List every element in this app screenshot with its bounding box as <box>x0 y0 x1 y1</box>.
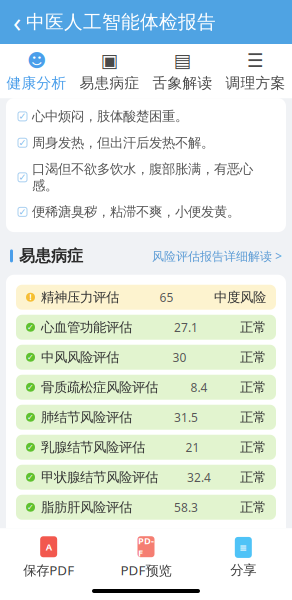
staticText: ▤ <box>173 50 191 71</box>
staticText: PDF预览 <box>120 561 171 579</box>
staticText: 正常 <box>240 349 266 365</box>
staticText: ✓ <box>27 323 34 332</box>
staticText: 正常 <box>240 379 266 395</box>
staticText: ‹ <box>13 4 21 40</box>
staticText: 心血管功能评估 <box>41 319 132 335</box>
staticText: ▣ <box>100 50 118 71</box>
button[interactable]: A <box>0 536 97 579</box>
staticText: PDF <box>138 534 154 559</box>
staticText: ✓ <box>18 207 26 217</box>
staticText: 脂肪肝风险评估 <box>41 499 132 515</box>
staticText: 58.3 <box>174 499 198 515</box>
staticText: 心中烦闷，肢体酸楚困重。 <box>32 108 188 125</box>
staticText: 周身发热，但出汗后发热不解。 <box>32 135 214 151</box>
button[interactable]: ☻ <box>0 50 73 92</box>
staticText: 保存PDF <box>23 561 74 579</box>
staticText: 30 <box>172 349 186 365</box>
button[interactable]: ✓ <box>16 465 276 490</box>
staticText: 32.4 <box>187 469 211 485</box>
staticText: 舌象面象分析 <box>19 571 115 590</box>
staticText: 健康分析 <box>6 74 66 92</box>
staticText: ✓ <box>27 473 34 482</box>
staticText: 易患病症 <box>19 246 83 266</box>
staticText: ✓ <box>27 383 34 392</box>
button[interactable]: ✓ <box>16 315 276 340</box>
staticText: 8.4 <box>190 379 207 395</box>
staticText: 风险评估报告详细解读 > <box>152 248 282 264</box>
staticText: ✓ <box>27 353 34 362</box>
staticText: 正常 <box>240 409 266 425</box>
button[interactable]: ☰ <box>219 50 292 92</box>
staticText: 精神压力评估 <box>41 289 119 305</box>
button[interactable]: ✓ <box>16 375 276 400</box>
staticText: ✓ <box>27 503 34 512</box>
staticText: ☰ <box>247 50 264 71</box>
staticText: 中医知识：常见病中医风险评估> <box>16 531 191 547</box>
staticText: 中度风险 <box>214 289 266 305</box>
staticText: AI专家解读舌象 > <box>188 572 282 588</box>
staticText: ✓ <box>18 111 26 122</box>
staticText: 肺结节风险评估 <box>41 409 132 425</box>
staticText: 中医人工智能体检报告 <box>26 10 216 33</box>
button[interactable]: ! <box>16 285 276 310</box>
button[interactable]: PDF <box>97 536 195 579</box>
staticText: 甲状腺结节风险评估 <box>41 469 158 485</box>
staticText: ✓ <box>18 137 26 148</box>
button[interactable]: ✓ <box>16 405 276 430</box>
staticText: ✓ <box>27 443 34 452</box>
staticText: ✓ <box>27 413 34 422</box>
staticText: 正常 <box>240 469 266 485</box>
staticText: ≡ <box>239 542 247 553</box>
button[interactable]: ▣ <box>73 50 146 92</box>
staticText: 分享 <box>230 562 256 578</box>
button[interactable]: 中医知识：常见病中医风险评估> <box>16 531 191 547</box>
staticText: ✓ <box>18 172 26 183</box>
button[interactable]: ≡ <box>195 537 292 578</box>
staticText: 正常 <box>240 499 266 515</box>
staticText: 31.5 <box>174 409 198 425</box>
staticText: 中风风险评估 <box>41 349 119 365</box>
button[interactable]: ✓ <box>16 495 276 520</box>
button[interactable]: 风险评估报告详细解读 > <box>152 248 282 264</box>
staticText: 便稀溏臭秽，粘滞不爽，小便发黄。 <box>32 204 240 220</box>
button[interactable]: ✓ <box>16 345 276 370</box>
staticText: 口渴但不欲多饮水，腹部胀满，有恶心感。 <box>32 161 253 194</box>
button[interactable]: AI专家解读舌象 > <box>188 572 282 588</box>
staticText: 21 <box>185 439 199 455</box>
staticText: 舌象解读 <box>152 74 212 92</box>
staticText: ! <box>29 292 31 302</box>
staticText: ☻ <box>27 50 46 71</box>
staticText: 骨质疏松症风险评估 <box>41 379 158 395</box>
staticText: 调理方案 <box>225 74 285 92</box>
button[interactable]: ▤ <box>146 50 219 92</box>
staticText: 乳腺结节风险评估 <box>41 439 145 455</box>
staticText: A <box>46 541 52 553</box>
staticText: 易患病症 <box>79 74 139 92</box>
staticText: 27.1 <box>174 319 198 335</box>
staticText: 65 <box>159 289 173 305</box>
button[interactable]: Back <box>8 8 26 36</box>
staticText: 正常 <box>240 439 266 455</box>
button[interactable]: ✓ <box>16 435 276 460</box>
staticText: 正常 <box>240 319 266 335</box>
